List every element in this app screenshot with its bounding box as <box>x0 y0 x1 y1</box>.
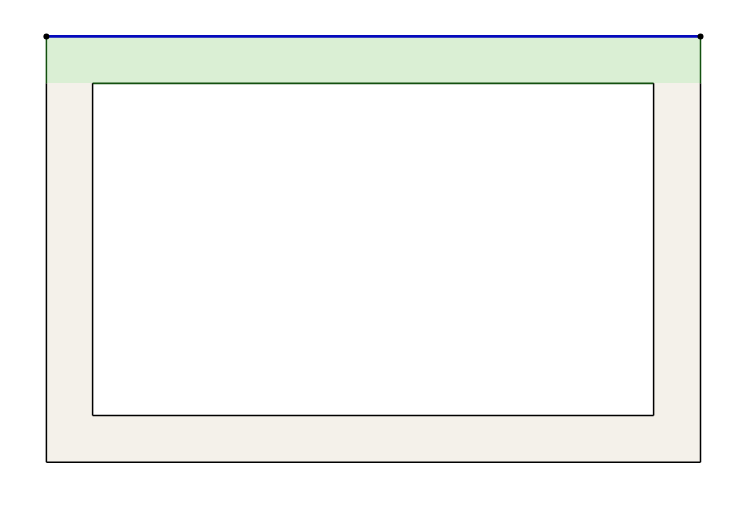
button[interactable]: Content area <box>92 83 653 415</box>
button[interactable]: Resize handle, left <box>38 28 54 44</box>
button[interactable]: Top app bar <box>46 36 700 83</box>
button[interactable]: Resize handle, right <box>693 28 709 44</box>
